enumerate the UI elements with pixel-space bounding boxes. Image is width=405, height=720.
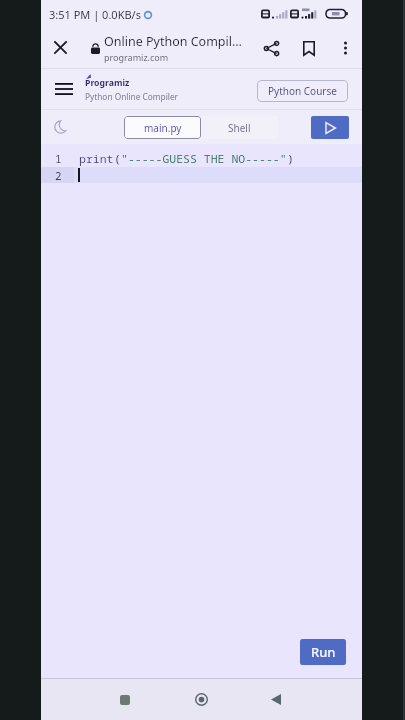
staticText: Python Course <box>268 84 337 98</box>
staticText: Online Python Compil… <box>104 33 242 50</box>
button[interactable]: Bookmark <box>290 28 328 68</box>
button[interactable]: Python Course <box>257 80 348 102</box>
staticText: Python Online Compiler <box>85 91 179 102</box>
button[interactable]: Run <box>300 639 346 665</box>
button[interactable]: Recent apps <box>101 679 149 720</box>
staticText: Programiz <box>85 77 130 89</box>
button[interactable]: Close <box>41 28 79 68</box>
staticText: programiz.com <box>104 51 169 63</box>
staticText: "-----GUESS THE NO-----" <box>121 151 287 167</box>
button[interactable]: Back <box>252 679 300 720</box>
staticText: main.py <box>144 121 182 135</box>
button[interactable]: Toggle dark mode <box>47 113 75 141</box>
staticText: ) <box>287 151 294 167</box>
staticText: 2 <box>55 168 62 183</box>
button[interactable]: Menu <box>41 69 83 109</box>
staticText: Shell <box>228 121 251 135</box>
staticText: print <box>79 151 114 167</box>
button[interactable]: main.py <box>124 116 201 139</box>
button[interactable]: More options <box>328 28 362 68</box>
button[interactable]: Shell <box>201 116 278 139</box>
staticText: 3:51 PM | 0.0KB/s <box>49 7 141 22</box>
button[interactable]: Home <box>177 679 225 720</box>
staticText: ( <box>114 151 121 167</box>
button[interactable]: Run code <box>311 116 349 139</box>
staticText: 1 <box>55 151 62 166</box>
button[interactable]: Share <box>252 28 290 68</box>
staticText: Run <box>311 643 336 661</box>
